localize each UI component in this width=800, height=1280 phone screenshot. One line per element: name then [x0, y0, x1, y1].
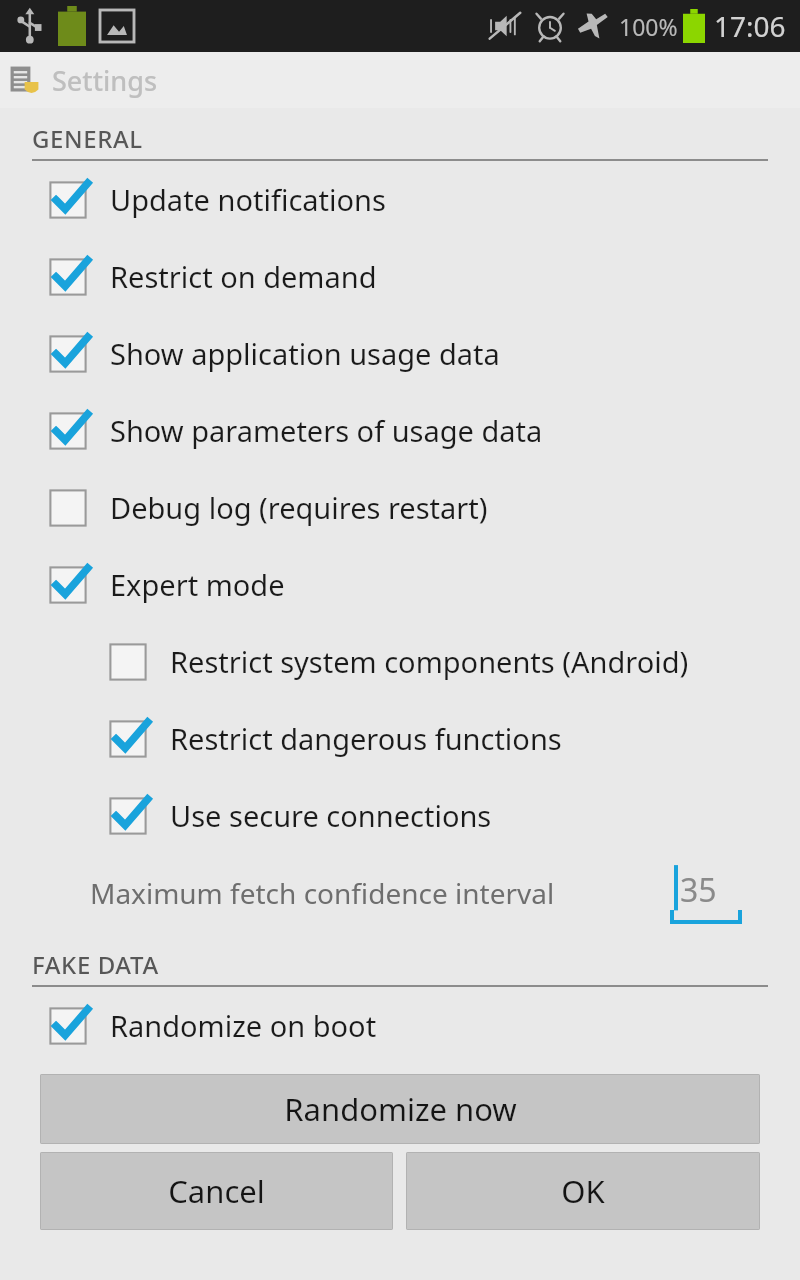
button[interactable]: Restrict system components (Android): [0, 623, 800, 700]
staticText: Expert mode: [110, 565, 285, 604]
button[interactable]: Update notifications: [0, 161, 800, 238]
staticText: Cancel: [168, 1170, 265, 1212]
staticText: Restrict on demand: [110, 257, 377, 296]
button[interactable]: OK: [406, 1152, 760, 1230]
staticText: 100%: [619, 11, 678, 42]
staticText: 35: [680, 868, 717, 912]
button[interactable]: Use secure connections: [0, 777, 800, 854]
button[interactable]: Restrict on demand: [0, 238, 800, 315]
button[interactable]: Expert mode: [0, 546, 800, 623]
staticText: Show application usage data: [110, 334, 500, 373]
staticText: Show parameters of usage data: [110, 411, 543, 450]
other: App icon: [8, 64, 40, 96]
button[interactable]: Debug log (requires restart): [0, 469, 800, 546]
button[interactable]: Show parameters of usage data: [0, 392, 800, 469]
button[interactable]: Restrict dangerous functions: [0, 700, 800, 777]
staticText: Restrict dangerous functions: [170, 719, 562, 758]
staticText: OK: [561, 1170, 605, 1212]
button[interactable]: Show application usage data: [0, 315, 800, 392]
staticText: Update notifications: [110, 180, 386, 219]
staticText: 17:06: [714, 7, 786, 45]
staticText: FAKE DATA: [32, 948, 159, 981]
staticText: Use secure connections: [170, 796, 492, 835]
staticText: GENERAL: [32, 122, 143, 155]
button[interactable]: Maximum fetch confidence interval: [0, 854, 800, 932]
button[interactable]: Cancel: [40, 1152, 393, 1230]
staticText: Maximum fetch confidence interval: [90, 874, 555, 912]
staticText: Debug log (requires restart): [110, 488, 488, 527]
staticText: Randomize on boot: [110, 1006, 377, 1045]
staticText: Restrict system components (Android): [170, 642, 689, 681]
button[interactable]: Randomize now: [40, 1074, 760, 1144]
staticText: Settings: [52, 62, 158, 99]
staticText: Randomize now: [284, 1088, 517, 1130]
button[interactable]: Randomize on boot: [0, 987, 800, 1064]
